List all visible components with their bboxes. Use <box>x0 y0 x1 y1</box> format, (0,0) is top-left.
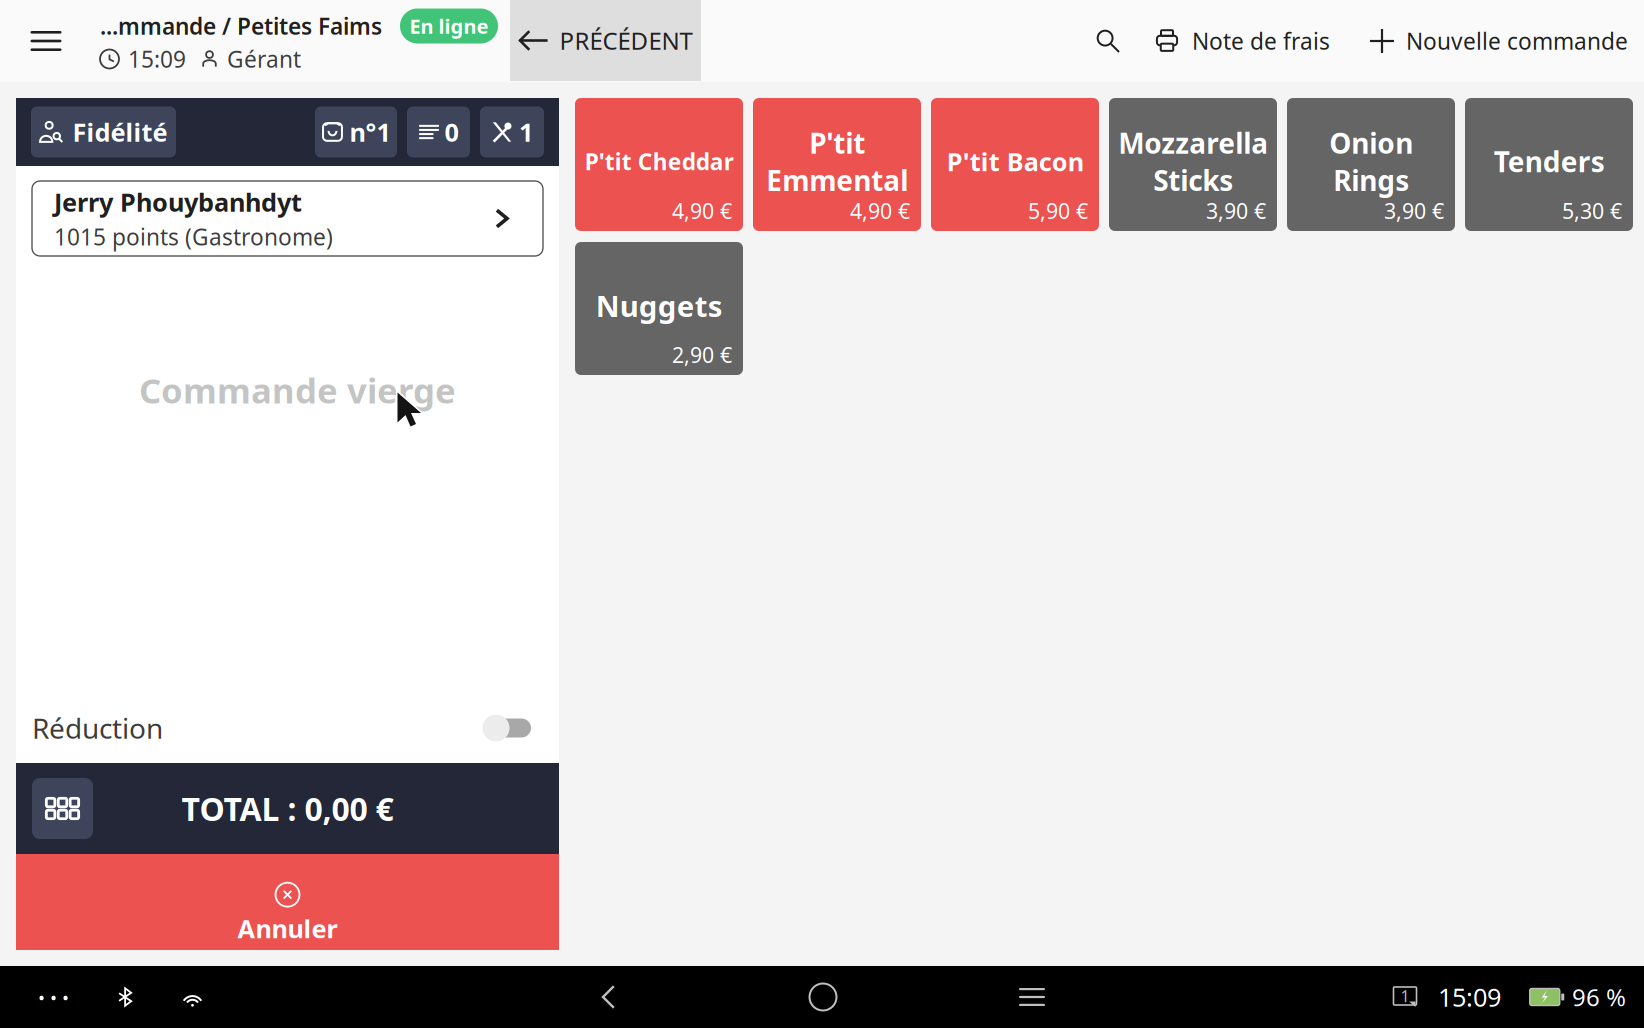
staticText: ...mmande / Petites Faims <box>100 11 382 41</box>
button[interactable]: Réduction <box>474 705 532 751</box>
staticText: 15:09 <box>1438 980 1501 1014</box>
button[interactable]: Nuggets <box>575 242 743 375</box>
staticText: 4,90 € <box>672 197 732 225</box>
staticText: Note de frais <box>1192 26 1330 56</box>
staticText: Gérant <box>227 44 301 74</box>
button[interactable]: Accueil <box>792 966 854 1028</box>
staticText: 3,90 € <box>1384 197 1444 225</box>
button[interactable]: 1 <box>480 106 544 157</box>
staticText: 1 <box>519 115 533 149</box>
staticText: Annuler <box>237 912 337 945</box>
staticText: 5,30 € <box>1562 197 1622 225</box>
staticText: P'tit Bacon <box>946 145 1083 178</box>
staticText: Nouvelle commande <box>1406 26 1628 56</box>
staticText: P'tit Cheddar <box>584 146 733 176</box>
staticText: 3,90 € <box>1206 197 1266 225</box>
staticText: 5,90 € <box>1028 197 1088 225</box>
button[interactable]: P'tit Emmental <box>753 98 921 231</box>
button[interactable]: 0 <box>407 106 470 157</box>
staticText: Commande vierge <box>139 367 456 413</box>
button[interactable]: Tenders <box>1465 98 1633 231</box>
button[interactable]: Annuler <box>16 854 559 950</box>
staticText: Mozzarella Sticks <box>1118 124 1268 199</box>
staticText: En ligne <box>409 13 488 39</box>
staticText: TOTAL : 0,00 € <box>181 787 393 830</box>
staticText: Fidélité <box>72 115 167 149</box>
button[interactable]: Rechercher <box>1086 10 1130 72</box>
staticText: 2,90 € <box>672 341 732 369</box>
staticText: Réduction <box>32 709 163 747</box>
button[interactable]: Onion Rings <box>1287 98 1455 231</box>
button[interactable]: Nouvelle commande <box>1350 10 1644 72</box>
staticText: P'tit Emmental <box>766 124 908 199</box>
button[interactable]: PRÉCÉDENT <box>510 0 701 81</box>
staticText: 96 % <box>1572 981 1626 1013</box>
button[interactable]: P'tit Cheddar <box>575 98 743 231</box>
button[interactable]: Fidélité <box>31 106 176 157</box>
staticText: Nuggets <box>595 286 722 325</box>
staticText: Tenders <box>1493 143 1604 180</box>
button[interactable]: Mozzarella Sticks <box>1109 98 1277 231</box>
staticText: 0 <box>444 115 458 149</box>
staticText: 4,90 € <box>850 197 910 225</box>
button[interactable]: Note de frais <box>1130 10 1350 72</box>
button[interactable]: P'tit Bacon <box>931 98 1099 231</box>
button[interactable]: Menu <box>13 8 79 74</box>
staticText: 15:09 <box>128 44 186 74</box>
button[interactable]: n°1 <box>315 106 397 157</box>
button[interactable]: Jerry Phouybanhdyt <box>32 181 543 256</box>
button[interactable]: TOTAL : 0,00 € <box>16 763 559 854</box>
button[interactable]: Retour <box>578 966 640 1028</box>
staticText: n°1 <box>349 115 390 149</box>
staticText: Onion Rings <box>1329 124 1413 199</box>
staticText: • • • <box>38 985 69 1009</box>
staticText: 1 <box>1400 985 1409 1007</box>
staticText: Jerry Phouybanhdyt <box>54 185 302 219</box>
staticText: 1015 points (Gastronome) <box>54 222 333 252</box>
button[interactable]: Menu système <box>1001 966 1063 1028</box>
staticText: PRÉCÉDENT <box>559 25 692 56</box>
